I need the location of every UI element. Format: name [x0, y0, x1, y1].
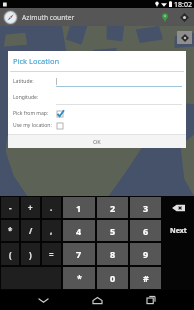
button[interactable]: * — [63, 267, 95, 289]
staticText: # — [143, 272, 149, 284]
staticText: * — [77, 272, 82, 284]
button[interactable]: 7 — [63, 243, 95, 265]
staticText: Pick Location — [13, 56, 60, 66]
staticText: 9 — [143, 248, 149, 260]
button[interactable] — [56, 77, 182, 87]
staticText: / — [29, 225, 33, 236]
staticText: 3 — [143, 202, 149, 214]
button[interactable]: 3 — [130, 197, 161, 218]
button[interactable]: Checked — [56, 110, 64, 118]
button[interactable]: Next — [162, 219, 194, 243]
button[interactable]: Delete — [162, 196, 194, 219]
staticText: OK — [93, 138, 101, 145]
button[interactable]: Use my location: — [11, 120, 57, 131]
staticText: ( — [9, 249, 12, 260]
button[interactable]: 9 — [130, 243, 161, 265]
staticText: + — [28, 202, 33, 213]
button[interactable]: # — [130, 267, 161, 289]
staticText: 6 — [143, 225, 149, 237]
staticText: . — [50, 202, 53, 213]
staticText: 1 — [76, 202, 82, 214]
button[interactable]: Azimuth counter — [3, 10, 18, 25]
button[interactable]: , — [42, 220, 61, 241]
staticText: * — [8, 225, 13, 236]
staticText: 5 — [110, 225, 116, 237]
staticText: Latitude: — [13, 78, 34, 85]
button[interactable]: + — [21, 197, 40, 218]
staticText: ) — [29, 249, 32, 260]
button[interactable]: Compass — [176, 9, 192, 25]
staticText: 4 — [76, 225, 82, 237]
button[interactable] — [56, 95, 182, 105]
button[interactable]: ) — [21, 243, 40, 265]
button[interactable]: 2 — [97, 197, 128, 218]
button[interactable]: 0 — [97, 267, 128, 289]
staticText: 0 — [110, 272, 116, 284]
button[interactable]: Pick from map: — [11, 108, 57, 119]
button[interactable]: Set location — [157, 9, 173, 25]
staticText: Longitude: — [13, 94, 39, 101]
staticText: Azimuth counter — [22, 13, 75, 22]
button[interactable]: . — [42, 197, 61, 218]
staticText: Use my location: — [13, 122, 52, 129]
button[interactable]: 5 — [97, 220, 128, 241]
button[interactable]: 4 — [63, 220, 95, 241]
button[interactable]: Unchecked — [56, 122, 64, 130]
staticText: , — [50, 225, 53, 236]
staticText: 18:02 — [174, 0, 192, 8]
staticText: - — [9, 202, 12, 213]
button[interactable]: 6 — [130, 220, 161, 241]
button[interactable]: * — [1, 220, 19, 241]
staticText: 8 — [110, 248, 116, 260]
button[interactable]: 1 — [63, 197, 95, 218]
staticText: 2 — [110, 202, 116, 214]
button[interactable]: ( — [1, 243, 19, 265]
button[interactable]: = — [42, 243, 61, 265]
button[interactable]: Back — [32, 290, 54, 310]
staticText: Pick from map: — [13, 110, 49, 117]
button[interactable]: - — [1, 197, 19, 218]
button[interactable]: 8 — [97, 243, 128, 265]
button[interactable]: / — [21, 220, 40, 241]
staticText: = — [49, 249, 54, 260]
button[interactable]: Home — [86, 290, 108, 310]
button[interactable]: My location — [177, 31, 192, 44]
staticText: Next — [170, 226, 187, 236]
staticText: 7 — [76, 248, 82, 260]
button[interactable]: OK — [57, 135, 137, 148]
button[interactable]: Recents — [140, 290, 162, 310]
